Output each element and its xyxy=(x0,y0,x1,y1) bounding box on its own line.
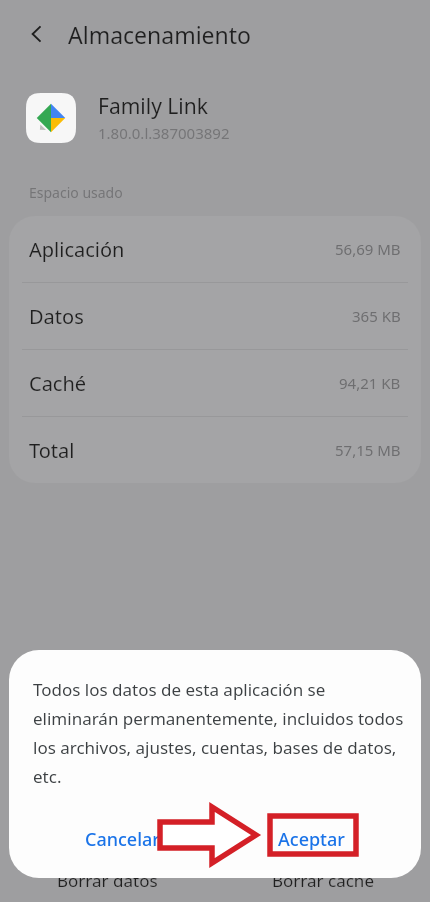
staticText: 57,15 MB xyxy=(335,440,401,460)
button[interactable]: Datos xyxy=(9,283,421,349)
button[interactable]: Aplicación xyxy=(9,216,421,282)
staticText: Cancelar xyxy=(85,827,160,852)
staticText: Aplicación xyxy=(29,236,125,263)
button[interactable]: Borrar caché xyxy=(215,869,430,892)
button[interactable]: Total xyxy=(9,417,421,483)
button[interactable]: Aceptar xyxy=(268,819,355,860)
staticText: Almacenamiento xyxy=(68,19,252,50)
button[interactable]: Cancelar xyxy=(77,819,168,860)
button[interactable]: Back xyxy=(14,11,60,57)
staticText: 56,69 MB xyxy=(335,239,401,259)
staticText: Borrar datos xyxy=(57,869,158,892)
staticText: Datos xyxy=(29,303,84,330)
staticText: Family Link xyxy=(98,92,208,121)
staticText: Todos los datos de esta aplicación se el… xyxy=(33,678,405,788)
staticText: 1.80.0.l.387003892 xyxy=(98,123,230,143)
staticText: Borrar caché xyxy=(272,869,374,892)
staticText: 94,21 KB xyxy=(339,373,401,393)
button[interactable]: Caché xyxy=(9,350,421,416)
staticText: Caché xyxy=(29,370,87,397)
button[interactable]: Borrar datos xyxy=(0,869,215,892)
staticText: Aceptar xyxy=(278,827,345,852)
staticText: 365 KB xyxy=(352,306,401,326)
staticText: Total xyxy=(29,437,75,464)
staticText: Espacio usado xyxy=(29,183,123,202)
